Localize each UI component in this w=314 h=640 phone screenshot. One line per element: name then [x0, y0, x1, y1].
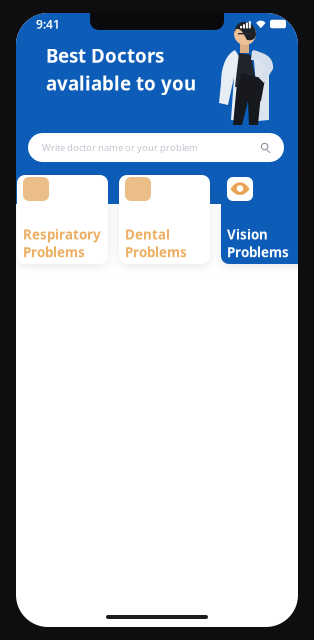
staticText: Problems	[23, 243, 85, 261]
staticText: 9:41	[36, 16, 60, 32]
button[interactable]: Dental	[119, 175, 210, 264]
button[interactable]: Vision	[221, 175, 312, 264]
staticText: Best Doctors	[46, 43, 164, 68]
staticText: Respiratory	[23, 226, 101, 243]
staticText: avaliable to you	[46, 71, 196, 96]
button[interactable]: Write doctor name or your problem	[28, 133, 284, 162]
staticText: Problems	[227, 243, 289, 261]
staticText: Dental	[125, 226, 170, 243]
staticText: Problems	[125, 243, 187, 261]
staticText: Vision	[227, 226, 268, 243]
staticText: Write doctor name or your problem	[42, 141, 198, 154]
button[interactable]: Respiratory	[17, 175, 108, 264]
